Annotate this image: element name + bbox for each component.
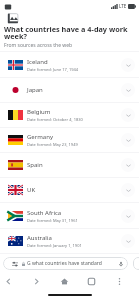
staticText: G what countries have standard xyxy=(27,260,102,267)
staticText: Date formed: June 17, 1944 xyxy=(27,67,79,72)
button[interactable]: Expand South Africa xyxy=(121,209,135,223)
button[interactable]: UK xyxy=(0,178,139,202)
staticText: Date formed: May 31, 1961 xyxy=(27,218,78,223)
staticText: Date formed: October 4, 1830 xyxy=(27,117,83,122)
staticText: From sources across the web xyxy=(4,42,73,49)
button[interactable]: Expand Japan xyxy=(121,83,135,97)
staticText: Iceland xyxy=(27,58,48,66)
button[interactable]: Expand Germany xyxy=(121,133,135,147)
staticText: South Africa xyxy=(27,209,62,217)
button[interactable]: Iceland xyxy=(0,52,139,77)
staticText: LTE xyxy=(119,3,127,9)
button[interactable]: Next tab xyxy=(133,257,139,270)
staticText: UK xyxy=(27,186,36,194)
button[interactable]: Japan xyxy=(0,78,139,102)
button[interactable]: Forward xyxy=(28,273,45,290)
other: Voice search xyxy=(118,261,124,267)
button[interactable]: Spain xyxy=(0,153,139,177)
button[interactable]: Page settings xyxy=(3,257,128,270)
button[interactable]: Expand Belgium xyxy=(121,108,135,122)
button[interactable]: More options xyxy=(111,273,128,290)
staticText: Spain xyxy=(27,161,43,169)
button[interactable]: Belgium xyxy=(0,103,139,127)
button[interactable]: Germany xyxy=(0,128,139,152)
button[interactable]: Australia xyxy=(0,229,139,253)
button[interactable]: Expand Spain xyxy=(121,158,135,172)
staticText: Australia xyxy=(27,234,52,242)
button[interactable]: South Africa xyxy=(0,203,139,228)
staticText: Japan xyxy=(27,86,43,94)
staticText: Date formed: May 23, 1949 xyxy=(27,142,78,147)
staticText: What countries have a 4-day work week? xyxy=(4,24,137,41)
button[interactable]: Back xyxy=(0,273,17,290)
button[interactable]: Expand Iceland xyxy=(121,58,135,72)
button[interactable]: Tabs xyxy=(83,273,100,290)
button[interactable]: Expand UK xyxy=(121,183,135,197)
button[interactable]: Expand Australia xyxy=(121,234,135,248)
staticText: Belgium xyxy=(27,108,51,116)
staticText: Date formed: January 1, 1901 xyxy=(27,243,82,248)
other: Page settings xyxy=(12,261,18,267)
staticText: Germany xyxy=(27,133,53,141)
button[interactable]: Home xyxy=(56,273,73,290)
